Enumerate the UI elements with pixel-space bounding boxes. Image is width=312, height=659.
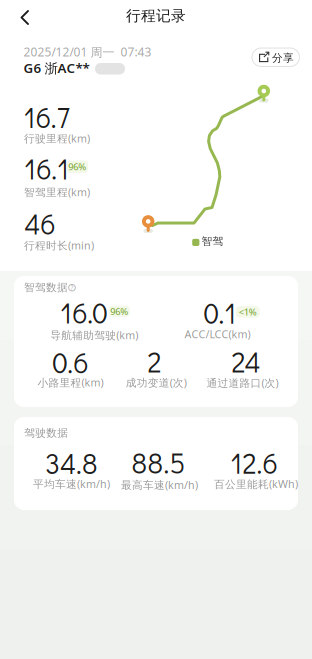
staticText: 2 — [147, 343, 161, 380]
staticText: 88.5 — [131, 444, 185, 481]
staticText: G6 浙AC** — [23, 59, 89, 77]
staticText: <1% — [239, 306, 257, 318]
staticText: 96% — [110, 305, 128, 317]
staticText: 智驾 — [201, 235, 223, 248]
button[interactable]: 返回 — [0, 0, 44, 35]
staticText: 小路里程(km) — [37, 375, 103, 390]
staticText: 百公里能耗(kWh) — [214, 477, 298, 491]
staticText: 0.6 — [52, 344, 88, 381]
staticText: ? — [70, 283, 73, 292]
staticText: 16.1 — [24, 150, 69, 187]
staticText: 智驾数据 — [24, 281, 68, 294]
staticText: 行驶里程(km) — [24, 131, 90, 145]
staticText: 2025/12/01 周一 07:43 — [23, 44, 151, 60]
staticText: 分享 — [272, 51, 294, 65]
staticText: 行程记录 — [126, 7, 186, 25]
staticText: 96% — [68, 161, 86, 173]
staticText: 0.1 — [203, 294, 236, 331]
staticText: 16.0 — [60, 294, 108, 331]
button[interactable]: 智驾数据说明 — [67, 283, 76, 292]
staticText: 46 — [24, 205, 55, 242]
staticText: 行程时长(min) — [24, 238, 94, 252]
staticText: ACC/LCC(km) — [184, 327, 250, 341]
button[interactable]: 分享 — [252, 48, 299, 66]
staticText: 通过道路口(次) — [206, 376, 278, 390]
staticText: 12.6 — [230, 444, 277, 481]
staticText: 智驾里程(km) — [24, 185, 90, 199]
staticText: 34.8 — [45, 445, 98, 481]
staticText: 16.7 — [24, 99, 70, 135]
staticText: 最高车速(km/h) — [121, 478, 198, 492]
staticText: 驾驶数据 — [24, 426, 68, 440]
staticText: 导航辅助驾驶(km) — [50, 328, 138, 342]
staticText: 成功变道(次) — [126, 375, 187, 390]
staticText: 平均车速(km/h) — [33, 477, 110, 491]
staticText: 24 — [231, 343, 260, 380]
